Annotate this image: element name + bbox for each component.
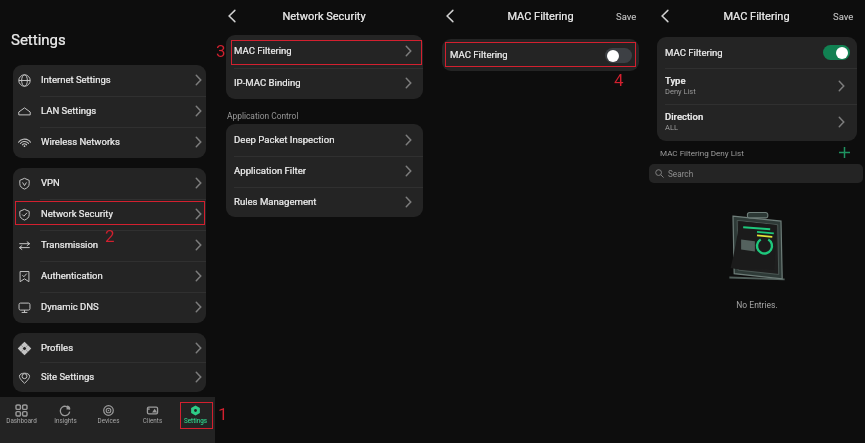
button[interactable]: Search — [649, 164, 863, 183]
staticText: Dynamic DNS — [41, 301, 99, 312]
staticText: VPN — [41, 177, 60, 188]
staticText: Network Security — [41, 208, 113, 219]
button[interactable]: Deep Packet Inspection — [226, 124, 423, 156]
staticText: 2 — [105, 226, 115, 246]
button[interactable]: Direction — [657, 104, 857, 140]
staticText: Settings — [11, 31, 66, 49]
button[interactable]: Back — [441, 7, 459, 25]
staticText: Save — [833, 11, 854, 22]
staticText: Clients — [131, 417, 174, 424]
button[interactable]: LAN Settings — [13, 96, 206, 127]
staticText: ALL — [665, 123, 678, 132]
button[interactable]: Profiles — [13, 333, 206, 364]
staticText: Deep Packet Inspection — [234, 134, 335, 145]
button[interactable]: Clients — [131, 401, 174, 427]
staticText: MAC Filtering Deny List — [660, 148, 744, 157]
staticText: Save — [616, 11, 637, 22]
staticText: LAN Settings — [41, 105, 97, 116]
button[interactable]: Save — [611, 8, 642, 24]
staticText: Application Filter — [234, 165, 307, 176]
button[interactable]: Transmission — [13, 230, 206, 261]
staticText: Site Settings — [41, 371, 95, 382]
button[interactable]: MAC Filtering — [226, 35, 423, 67]
staticText: MAC Filtering — [665, 47, 723, 58]
staticText: Direction — [665, 111, 704, 122]
staticText: Network Security — [282, 10, 366, 23]
button[interactable]: Wireless Networks — [13, 127, 206, 158]
staticText: 1 — [218, 404, 228, 424]
button[interactable]: Dynamic DNS — [13, 292, 206, 323]
staticText: Application Control — [227, 111, 299, 121]
button[interactable]: MAC Filtering — [442, 39, 639, 71]
staticText: 3 — [216, 41, 226, 61]
staticText: 4 — [614, 70, 624, 90]
staticText: MAC Filtering — [234, 45, 292, 56]
staticText: Profiles — [41, 342, 74, 353]
button[interactable]: Network Security — [13, 199, 206, 230]
button[interactable]: VPN — [13, 168, 206, 199]
button[interactable]: Back — [656, 7, 674, 25]
button[interactable]: Devices — [87, 401, 130, 427]
staticText: Devices — [87, 417, 130, 424]
button[interactable]: Type — [657, 68, 857, 104]
staticText: IP-MAC Binding — [234, 77, 301, 88]
staticText: Wireless Networks — [41, 136, 120, 147]
button[interactable]: Insights — [44, 401, 87, 427]
staticText: No Entries. — [736, 300, 778, 310]
button[interactable]: Back — [223, 7, 241, 25]
staticText: Type — [665, 75, 686, 86]
staticText: Transmission — [41, 239, 99, 250]
button[interactable]: Authentication — [13, 261, 206, 292]
button[interactable]: Site Settings — [13, 362, 206, 393]
button[interactable]: Dashboard — [0, 401, 43, 427]
staticText: Search — [668, 169, 694, 179]
staticText: Settings — [174, 417, 217, 424]
staticText: MAC Filtering — [507, 10, 574, 23]
button[interactable]: Turn on — [605, 48, 632, 63]
staticText: Insights — [44, 417, 87, 424]
staticText: Deny List — [665, 87, 696, 96]
button[interactable]: Add entry — [837, 145, 851, 159]
staticText: Internet Settings — [41, 74, 111, 85]
button[interactable]: Settings — [174, 401, 217, 427]
staticText: Rules Management — [234, 196, 317, 207]
button[interactable]: IP-MAC Binding — [226, 67, 423, 99]
staticText: Dashboard — [0, 417, 43, 424]
button[interactable]: Turn off — [823, 45, 850, 60]
button[interactable]: Rules Management — [226, 186, 423, 218]
button[interactable]: MAC Filtering — [657, 37, 857, 69]
button[interactable]: Application Filter — [226, 155, 423, 187]
staticText: MAC Filtering — [450, 49, 508, 60]
staticText: Authentication — [41, 270, 103, 281]
staticText: MAC Filtering — [723, 10, 790, 23]
button[interactable]: Save — [828, 8, 859, 24]
button[interactable]: Internet Settings — [13, 65, 206, 96]
